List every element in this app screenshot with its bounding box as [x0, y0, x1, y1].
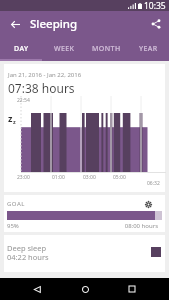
button[interactable]: Deep sleep [4, 235, 165, 272]
staticText: 05:00 [113, 174, 126, 181]
staticText: 03:00 [83, 174, 96, 181]
staticText: Jan 21, 2016 - Jan 22, 2016 [8, 71, 82, 79]
staticText: 95% [7, 222, 19, 230]
staticText: YEAR [139, 44, 158, 54]
staticText: GOAL [7, 200, 25, 208]
staticText: DAY [14, 44, 29, 54]
button[interactable]: GOAL [4, 195, 165, 232]
staticText: Deep sleep [7, 243, 47, 253]
button[interactable]: Share [143, 11, 169, 37]
staticText: 22:54 [17, 97, 30, 104]
staticText: Sleeping [30, 16, 78, 32]
button[interactable]: Home [74, 278, 96, 300]
staticText: 04:22 hours [7, 252, 49, 262]
button[interactable]: Back [0, 11, 30, 37]
button[interactable]: DAY [0, 37, 43, 61]
staticText: 06:32 [147, 180, 160, 187]
staticText: 23:00 [17, 174, 30, 181]
staticText: WEEK [54, 44, 75, 54]
staticText: 07:38 hours [8, 80, 75, 96]
staticText: 10:35 [144, 0, 166, 11]
button[interactable]: YEAR [127, 37, 169, 61]
staticText: 08:00 hours [124, 222, 158, 230]
button[interactable]: MONTH [85, 37, 127, 61]
staticText: z [8, 112, 13, 124]
button[interactable]: Back [26, 278, 48, 300]
staticText: 01:00 [52, 174, 65, 181]
button[interactable]: Recents [121, 278, 143, 300]
staticText: z [13, 118, 16, 125]
staticText: MONTH [92, 44, 121, 54]
button[interactable]: Goal settings [142, 198, 154, 210]
button[interactable]: WEEK [43, 37, 85, 61]
